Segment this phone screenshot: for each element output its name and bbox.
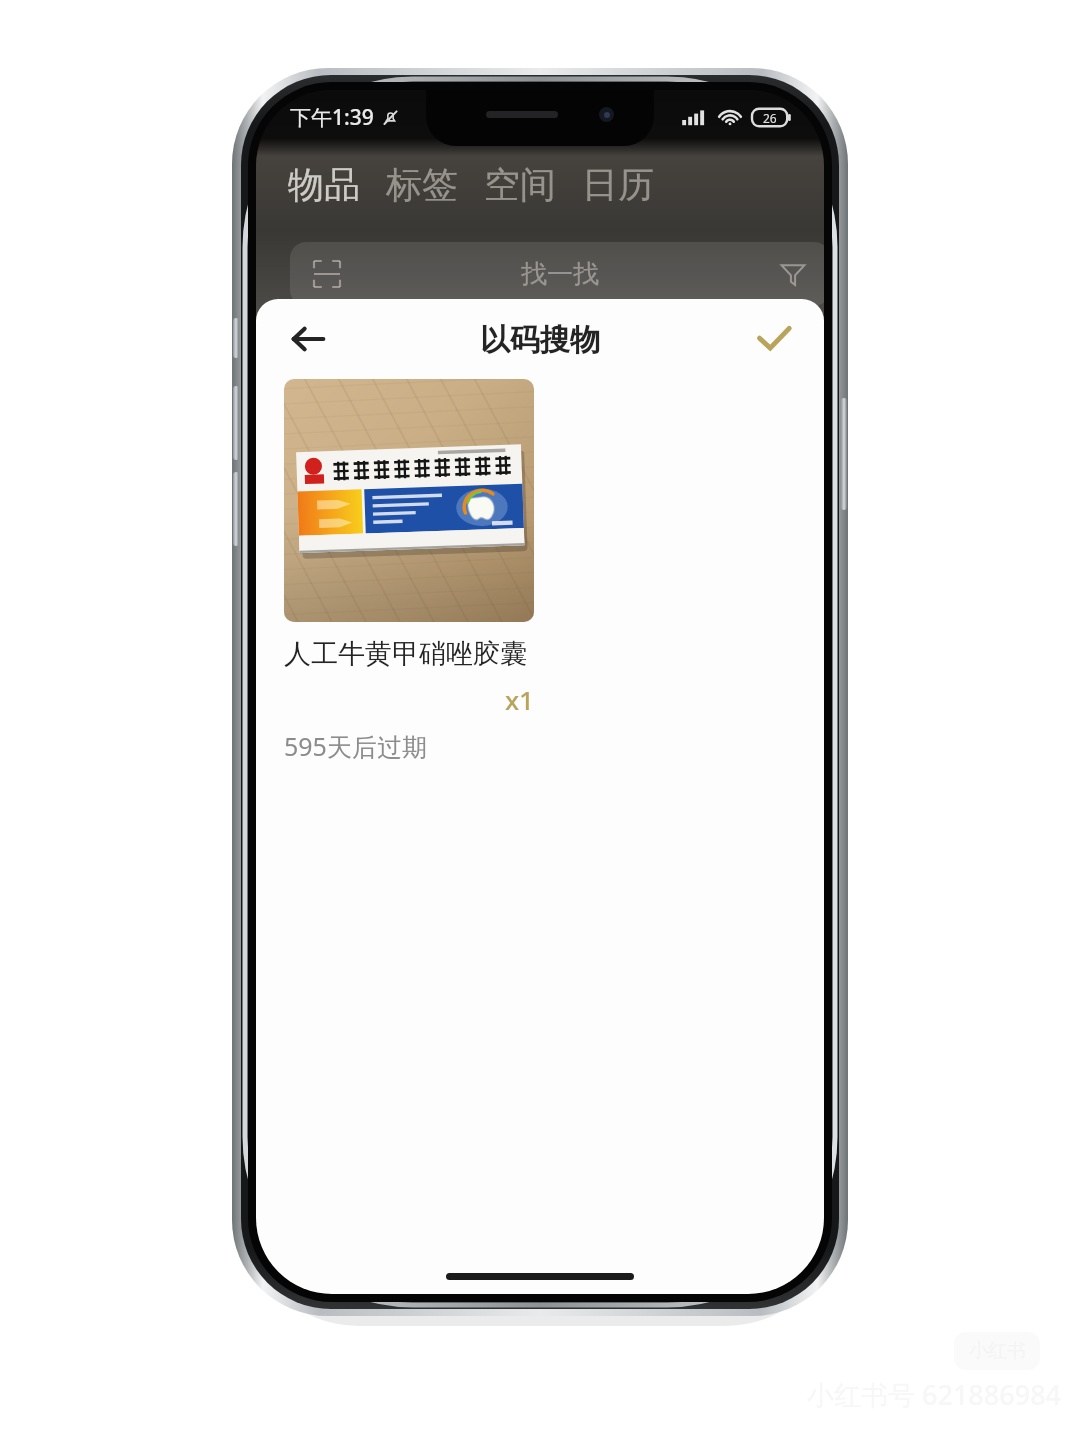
staticText: x1	[505, 682, 534, 717]
staticText: 物品	[288, 162, 360, 207]
button[interactable]: 确认	[744, 309, 804, 369]
button[interactable]: 返回	[278, 309, 338, 369]
staticText: 人工牛黄甲硝唑胶囊	[284, 637, 527, 671]
staticText: 下午1:39	[290, 103, 374, 132]
staticText: 空间	[484, 162, 556, 207]
staticText: 标签	[386, 162, 458, 207]
staticText: 找一找	[521, 258, 599, 291]
staticText: 以码搜物	[480, 321, 600, 359]
staticText: 26	[763, 110, 777, 126]
staticText: 日历	[582, 162, 654, 207]
staticText: 595天后过期	[284, 729, 427, 763]
button[interactable]: 人工牛黄甲硝唑胶囊	[256, 379, 824, 763]
staticText: 小红书号 621886984	[807, 1376, 1062, 1413]
